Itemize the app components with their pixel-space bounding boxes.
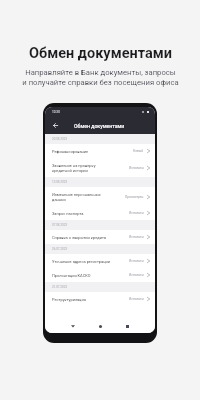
staticText: Просмотрен xyxy=(125,195,144,199)
staticText: Исполнен xyxy=(129,166,144,170)
staticText: Обмен документами xyxy=(74,123,125,129)
button[interactable]: Запрос паспорта xyxy=(45,206,155,220)
staticText: Рефинансирование xyxy=(52,149,133,154)
staticText: 12:30 xyxy=(52,110,60,114)
staticText: Запрос паспорта xyxy=(52,211,129,216)
button[interactable]: Back xyxy=(45,117,155,134)
button[interactable]: Recent apps xyxy=(122,321,132,331)
button[interactable]: Заявление на проверку кредитной истории xyxy=(45,158,155,177)
button[interactable]: Уточнение адреса регистрации xyxy=(45,254,155,268)
button[interactable]: Справка о закрытии кредита xyxy=(45,230,155,244)
staticText: 13.08.2023 xyxy=(52,180,68,184)
staticText: Заявление на проверку кредитной истории xyxy=(52,163,129,173)
staticText: Исполнен xyxy=(129,235,144,239)
staticText: Исполнен xyxy=(129,211,144,215)
staticText: Обмен документами xyxy=(29,45,172,62)
staticText: Изменение персональных данных xyxy=(52,192,125,202)
staticText: 20.08.2023 xyxy=(52,137,68,141)
button[interactable]: Back xyxy=(68,321,78,331)
button[interactable]: Изменение персональных данных xyxy=(45,187,155,206)
staticText: Реструктуризация xyxy=(52,297,129,302)
button[interactable]: Пролонгация КАСКО xyxy=(45,268,155,282)
staticText: Исполнен xyxy=(129,297,144,301)
staticText: Пролонгация КАСКО xyxy=(52,273,129,278)
staticText: 21.07.2023 xyxy=(52,285,68,289)
staticText: Исполнен xyxy=(129,259,144,263)
staticText: Уточнение адреса регистрации xyxy=(52,259,129,264)
button[interactable]: Рефинансирование xyxy=(45,144,155,158)
button[interactable]: Back xyxy=(51,121,60,130)
staticText: Исполнен xyxy=(129,273,144,277)
button[interactable]: Реструктуризация xyxy=(45,292,155,306)
staticText: Направляйте в Банк документы, запросы и … xyxy=(22,68,179,87)
staticText: 26.07.2023 xyxy=(52,247,68,251)
button[interactable]: Home xyxy=(95,321,105,331)
staticText: 07.08.2023 xyxy=(52,223,68,227)
staticText: Справка о закрытии кредита xyxy=(52,235,129,240)
staticText: Новый xyxy=(133,149,144,153)
